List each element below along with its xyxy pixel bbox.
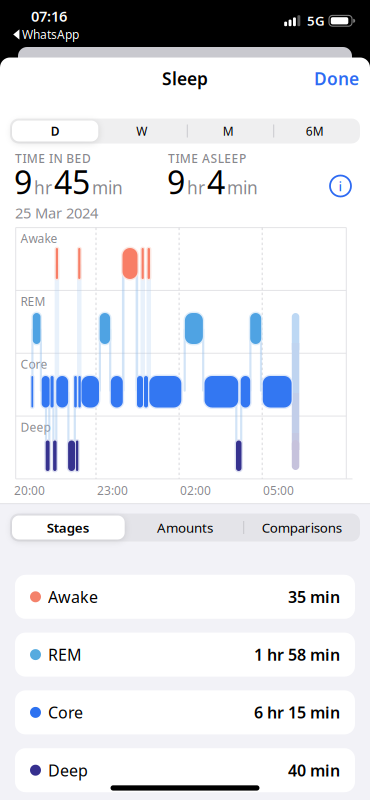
staticText: TIME ASLEEP xyxy=(168,150,246,166)
staticText: Sleep xyxy=(162,67,208,90)
staticText: 45 xyxy=(54,160,90,203)
staticText: Stages xyxy=(47,519,90,536)
staticText: 02:00 xyxy=(180,482,211,498)
button[interactable]: D xyxy=(12,118,98,143)
staticText: 05:00 xyxy=(263,482,294,498)
staticText: hr xyxy=(34,176,52,199)
button[interactable]: Comparisons xyxy=(246,513,358,541)
staticText: Comparisons xyxy=(262,519,342,536)
button[interactable]: Awake xyxy=(15,575,355,619)
staticText: 5G xyxy=(307,12,325,29)
button[interactable]: 6M xyxy=(272,118,358,143)
staticText: TIME IN BED xyxy=(15,150,91,166)
staticText: Done xyxy=(314,67,359,90)
staticText: 25 Mar 2024 xyxy=(15,203,98,222)
button[interactable]: Amounts xyxy=(129,513,241,541)
staticText: 6 hr 15 min xyxy=(254,702,340,723)
staticText: Awake xyxy=(20,230,57,246)
button[interactable]: Done xyxy=(314,67,359,90)
staticText: hr xyxy=(187,176,205,199)
button[interactable]: Deep xyxy=(15,748,355,792)
staticText: Deep xyxy=(48,760,88,781)
staticText: REM xyxy=(48,644,82,665)
staticText: 40 min xyxy=(288,760,340,781)
button[interactable]: Stages xyxy=(12,513,124,541)
staticText: 35 min xyxy=(288,586,340,607)
staticText: 4 xyxy=(207,160,225,203)
staticText: 6M xyxy=(306,123,324,139)
button[interactable]: About Sleep xyxy=(327,173,353,199)
staticText: 23:00 xyxy=(97,482,128,498)
staticText: 07:16 xyxy=(31,6,67,26)
staticText: Deep xyxy=(20,419,50,435)
staticText: W xyxy=(136,123,147,139)
staticText: 1 hr 58 min xyxy=(254,644,340,665)
staticText: 9 xyxy=(14,160,32,203)
staticText: min xyxy=(227,176,258,199)
button[interactable]: REM xyxy=(15,633,355,677)
staticText: M xyxy=(223,123,234,139)
button[interactable]: M xyxy=(185,118,271,143)
staticText: Core xyxy=(48,702,83,723)
staticText: 20:00 xyxy=(14,482,45,498)
staticText: D xyxy=(51,123,60,139)
staticText: WhatsApp xyxy=(22,26,79,42)
button[interactable]: Back to WhatsApp xyxy=(13,26,79,42)
staticText: min xyxy=(92,176,123,199)
staticText: Amounts xyxy=(157,519,213,536)
button[interactable]: W xyxy=(99,118,185,143)
staticText: Core xyxy=(20,356,47,372)
staticText: 9 xyxy=(167,160,185,203)
staticText: Awake xyxy=(48,586,98,607)
staticText: REM xyxy=(20,293,45,309)
staticText: i xyxy=(338,177,342,195)
button[interactable]: Core xyxy=(15,690,355,734)
